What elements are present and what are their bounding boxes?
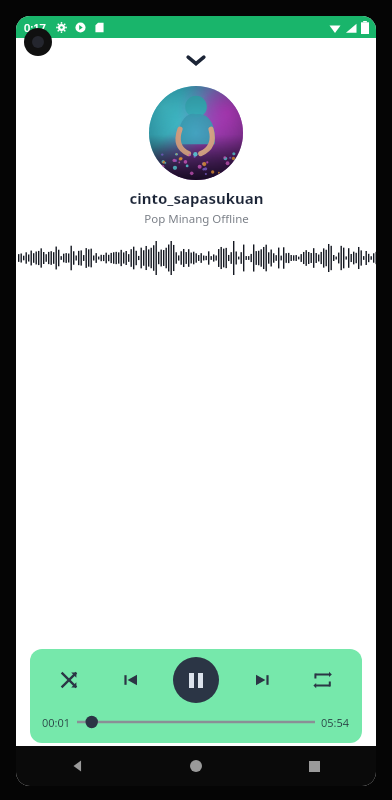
- button[interactable]: Pause: [173, 657, 219, 703]
- staticText: Pop Minang Offline: [144, 211, 249, 227]
- staticText: 00:01: [42, 715, 71, 730]
- button[interactable]: Back: [60, 748, 96, 784]
- button[interactable]: Home: [178, 748, 214, 784]
- button[interactable]: Collapse: [176, 40, 216, 80]
- button[interactable]: Previous: [112, 661, 150, 699]
- staticText: cinto_sapasukuan: [129, 188, 264, 208]
- button[interactable]: Seek bar: [77, 711, 315, 733]
- button[interactable]: Repeat: [304, 661, 342, 699]
- staticText: 0:17: [24, 20, 46, 35]
- staticText: 05:54: [321, 715, 350, 730]
- button[interactable]: Audio waveform: [16, 241, 376, 275]
- button[interactable]: Shuffle: [50, 661, 88, 699]
- button[interactable]: Recent apps: [296, 748, 332, 784]
- button[interactable]: Next: [243, 661, 281, 699]
